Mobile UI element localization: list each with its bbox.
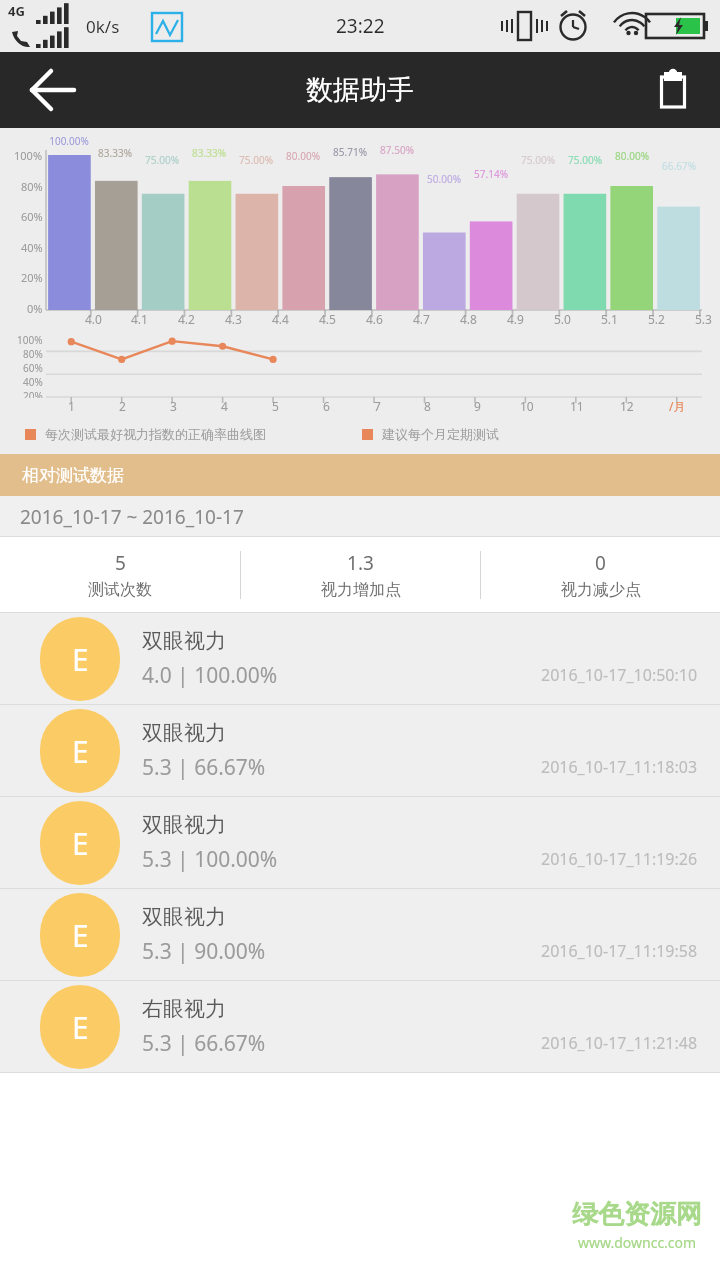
staticText: 4.7: [413, 311, 430, 327]
staticText: 50.00%: [427, 172, 461, 186]
staticText: 5.2: [648, 311, 665, 327]
staticText: 5.3 | 100.00%: [142, 845, 278, 874]
staticText: 9: [474, 398, 481, 414]
staticText: 4.8: [460, 311, 477, 327]
staticText: E: [72, 823, 89, 864]
staticText: 83.33%: [98, 146, 132, 160]
staticText: 11: [570, 398, 584, 414]
button[interactable]: E: [0, 981, 720, 1073]
button[interactable]: Back: [20, 60, 80, 120]
staticText: 8: [424, 398, 431, 414]
staticText: 0%: [27, 301, 43, 316]
button[interactable]: 1.3: [241, 537, 480, 613]
staticText: 5.3 | 66.67%: [142, 753, 266, 782]
staticText: 60%: [21, 209, 43, 224]
staticText: 75.00%: [568, 153, 602, 167]
button[interactable]: Records: [648, 65, 698, 115]
staticText: 75.00%: [239, 153, 273, 167]
staticText: 4.6: [366, 311, 383, 327]
button[interactable]: E: [0, 889, 720, 981]
staticText: 建议每个月定期测试: [382, 426, 499, 442]
staticText: E: [72, 639, 89, 680]
staticText: 5: [272, 398, 279, 414]
staticText: 相对测试数据: [22, 465, 124, 486]
staticText: 数据助手: [306, 73, 414, 107]
staticText: 57.14%: [474, 167, 508, 181]
staticText: 0k/s: [86, 15, 120, 38]
staticText: 2016_10-17_11:19:58: [541, 940, 698, 962]
staticText: 双眼视力: [142, 812, 226, 838]
staticText: 66.67%: [662, 159, 696, 173]
staticText: 10: [520, 398, 534, 414]
staticText: 双眼视力: [142, 628, 226, 654]
staticText: 2016_10-17_11:18:03: [541, 756, 698, 778]
staticText: 5.0: [554, 311, 571, 327]
staticText: 20%: [21, 270, 43, 285]
staticText: 23:22: [336, 13, 385, 39]
staticText: 5.3 | 66.67%: [142, 1029, 266, 1058]
staticText: 100%: [17, 333, 43, 347]
staticText: 4.0: [85, 311, 102, 327]
staticText: 20%: [23, 389, 43, 398]
staticText: 5: [115, 550, 126, 576]
button[interactable]: 5: [0, 537, 240, 613]
staticText: 100%: [14, 148, 43, 163]
staticText: 100.00%: [49, 134, 89, 148]
staticText: 双眼视力: [142, 904, 226, 930]
staticText: 40%: [23, 375, 43, 389]
staticText: 80%: [23, 347, 43, 361]
staticText: 83.33%: [192, 146, 226, 160]
staticText: 视力减少点: [561, 580, 641, 600]
staticText: 5.3: [695, 311, 712, 327]
staticText: E: [72, 1007, 89, 1048]
staticText: 1: [68, 398, 75, 414]
staticText: 6: [323, 398, 330, 414]
staticText: 4.9: [507, 311, 524, 327]
staticText: 2016_10-17_10:50:10: [541, 664, 698, 686]
staticText: 80%: [21, 179, 43, 194]
staticText: 2: [119, 398, 126, 414]
staticText: 75.00%: [521, 153, 555, 167]
staticText: 4.4: [272, 311, 289, 327]
staticText: www.downcc.com: [578, 1233, 697, 1252]
staticText: E: [72, 915, 89, 956]
staticText: 75.00%: [145, 153, 179, 167]
staticText: 双眼视力: [142, 720, 226, 746]
staticText: 右眼视力: [142, 996, 226, 1022]
button[interactable]: E: [0, 705, 720, 797]
staticText: 7: [374, 398, 381, 414]
staticText: 80.00%: [286, 149, 320, 163]
button[interactable]: E: [0, 613, 720, 705]
button[interactable]: 0: [481, 537, 720, 613]
staticText: 2016_10-17_11:19:26: [541, 848, 698, 870]
staticText: 测试次数: [88, 580, 152, 600]
staticText: 1.3: [347, 550, 374, 576]
staticText: 87.50%: [380, 143, 414, 157]
staticText: 0: [595, 550, 606, 576]
staticText: E: [72, 731, 89, 772]
staticText: 40%: [21, 240, 43, 255]
staticText: 视力增加点: [321, 580, 401, 600]
staticText: 5.3 | 90.00%: [142, 937, 266, 966]
staticText: 80.00%: [615, 149, 649, 163]
staticText: 60%: [23, 361, 43, 375]
staticText: 4.5: [319, 311, 336, 327]
staticText: 绿色资源网: [572, 1198, 702, 1231]
button[interactable]: E: [0, 797, 720, 889]
staticText: 4.2: [178, 311, 195, 327]
staticText: 4.1: [131, 311, 148, 327]
staticText: /月: [669, 398, 686, 414]
staticText: 4: [221, 398, 228, 414]
staticText: 12: [620, 398, 634, 414]
staticText: 2016_10-17 ~ 2016_10-17: [20, 504, 244, 530]
staticText: 85.71%: [333, 145, 367, 159]
staticText: 2016_10-17_11:21:48: [541, 1032, 698, 1054]
staticText: 4.0 | 100.00%: [142, 661, 278, 690]
staticText: 3: [170, 398, 177, 414]
staticText: 每次测试最好视力指数的正确率曲线图: [45, 426, 266, 442]
staticText: 5.1: [601, 311, 618, 327]
staticText: 4.3: [225, 311, 242, 327]
staticText: 4G: [8, 2, 25, 20]
